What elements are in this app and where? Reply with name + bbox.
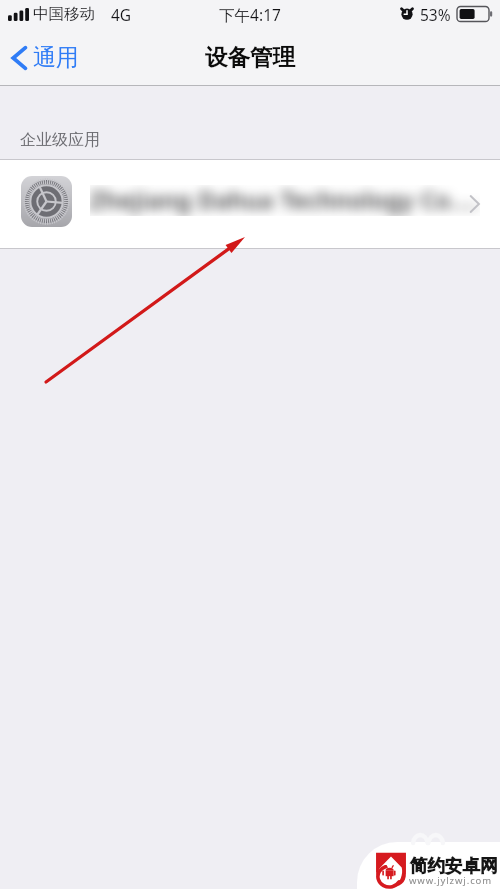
- button[interactable]: Back to 通用: [0, 38, 89, 77]
- staticText: 中国移动: [33, 4, 95, 24]
- staticText: 企业级应用: [20, 130, 100, 150]
- staticText: 下午4:17: [0, 4, 500, 25]
- staticText: 简约安卓网: [410, 855, 498, 877]
- button[interactable]: Zhejiang Dahua Technology Co. enterprise…: [0, 159, 500, 249]
- staticText: 53%: [420, 4, 451, 25]
- staticText: 4G: [111, 4, 132, 25]
- staticText: 设备管理: [205, 43, 295, 71]
- staticText: www.jylzwj.com: [409, 874, 493, 887]
- staticText: 通用: [33, 43, 79, 72]
- staticText: Zhejiang Dahua Technology Co....: [90, 185, 480, 216]
